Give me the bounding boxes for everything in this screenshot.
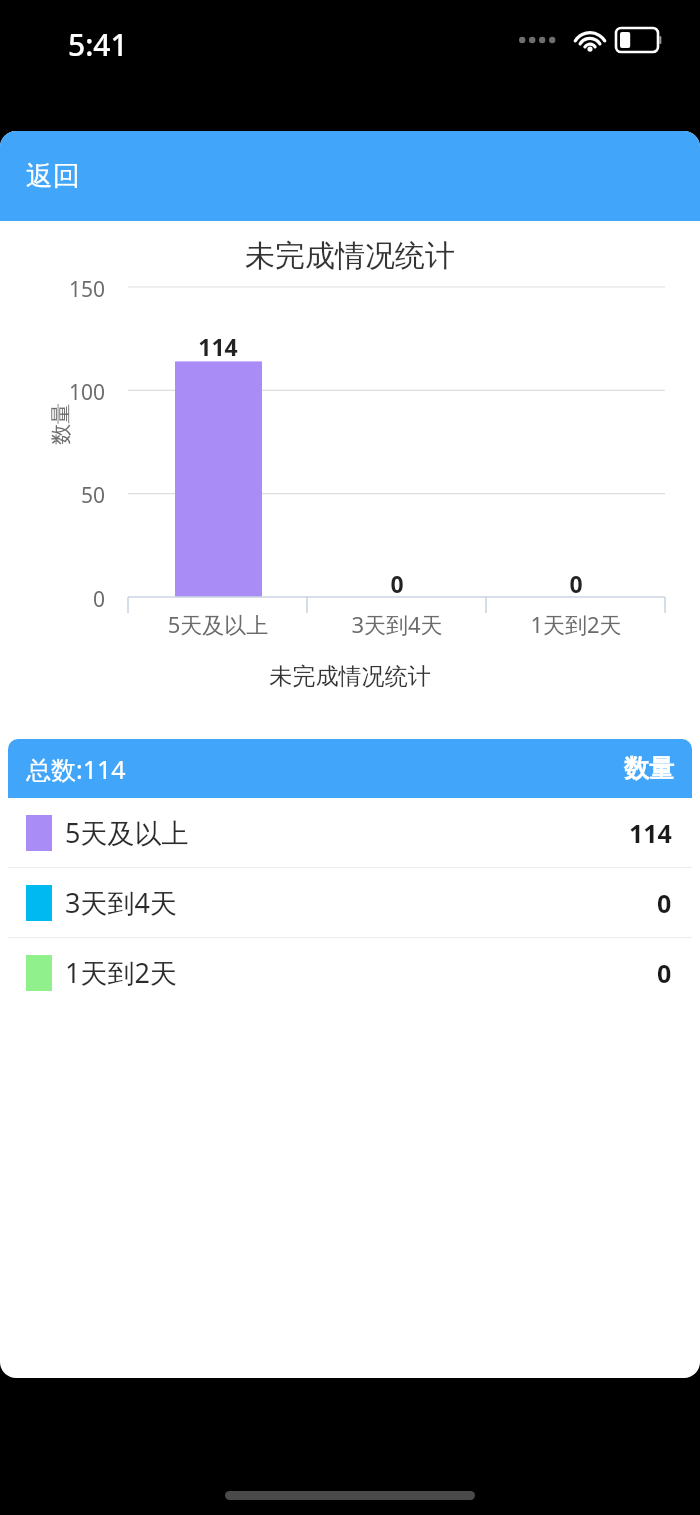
staticText: 0 (657, 956, 672, 990)
staticText: 0 (0, 585, 105, 614)
staticText: 3天到4天 (307, 609, 487, 639)
button[interactable]: 返回 (0, 147, 106, 205)
staticText: 100 (0, 378, 105, 407)
staticText: 114 (168, 331, 268, 362)
staticText: 150 (0, 275, 105, 304)
staticText: 总数:114 (26, 752, 126, 786)
staticText: 5天及以上 (128, 609, 308, 639)
button[interactable]: 5天及以上 (8, 798, 692, 867)
staticText: 数量 (624, 753, 674, 784)
button[interactable]: 1天到2天 (8, 938, 692, 1007)
staticText: 114 (629, 816, 672, 850)
staticText: 0 (526, 568, 626, 599)
staticText: 0 (657, 886, 672, 920)
staticText: 未完成情况统计 (0, 662, 700, 691)
staticText: 5:41 (68, 24, 128, 65)
button[interactable]: 3天到4天 (8, 868, 692, 937)
staticText: 数量 (48, 403, 74, 445)
staticText: 3天到4天 (65, 884, 177, 921)
staticText: 50 (0, 481, 105, 510)
staticText: 未完成情况统计 (0, 237, 700, 275)
staticText: 0 (347, 568, 447, 599)
staticText: 返回 (26, 159, 80, 193)
staticText: 5天及以上 (65, 814, 189, 851)
staticText: 1天到2天 (486, 609, 666, 639)
staticText: 1天到2天 (65, 954, 177, 991)
